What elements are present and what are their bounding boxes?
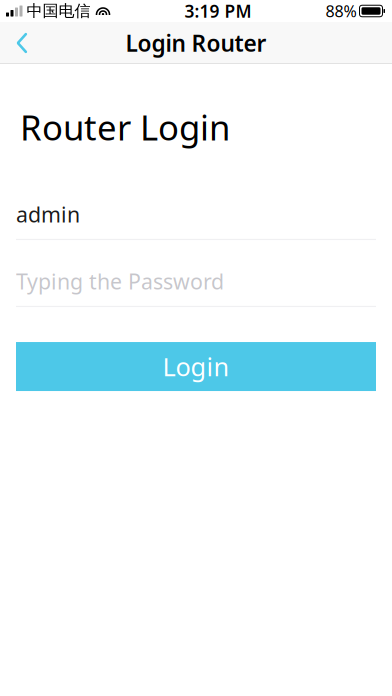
staticText: Typing the Password: [16, 267, 224, 295]
staticText: 3:19 PM: [184, 0, 251, 22]
staticText: admin: [16, 200, 80, 228]
button[interactable]: Back: [0, 22, 44, 64]
staticText: Router Login: [20, 104, 230, 150]
staticText: 中国电信: [26, 1, 90, 21]
staticText: Login Router: [125, 28, 266, 58]
staticText: Login: [162, 350, 229, 383]
button[interactable]: Login: [16, 342, 376, 391]
staticText: 88%: [325, 0, 356, 22]
